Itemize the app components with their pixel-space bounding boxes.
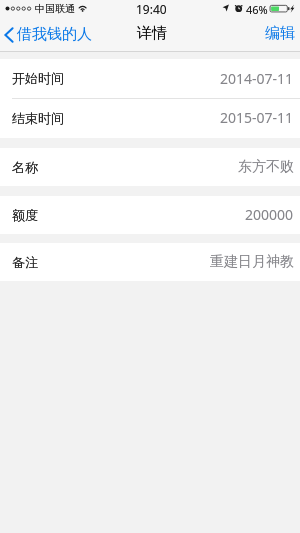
button[interactable]: Back [4, 25, 92, 44]
button[interactable]: 名称 [0, 148, 300, 186]
staticText: 借我钱的人 [17, 25, 92, 44]
staticText: 名称 [12, 159, 38, 175]
staticText: 开始时间 [12, 70, 64, 86]
staticText: 46% [246, 2, 268, 17]
staticText: 编辑 [265, 24, 295, 43]
staticText: 2014-07-11 [220, 69, 294, 88]
staticText: 额度 [12, 207, 38, 223]
button[interactable]: 编辑 [265, 24, 295, 43]
staticText: 详情 [137, 24, 167, 43]
staticText: 19:40 [136, 1, 167, 17]
button[interactable]: 额度 [0, 196, 300, 234]
staticText: 详情 [137, 24, 167, 43]
staticText: 额度 [12, 207, 38, 223]
staticText: 开始时间 [12, 70, 64, 86]
staticText: 重建日月神教 [210, 253, 294, 271]
staticText: 名称 [12, 159, 38, 175]
staticText: 东方不败 [238, 158, 294, 176]
button[interactable]: 备注 [0, 243, 300, 281]
staticText: 中国联通 [35, 2, 75, 15]
staticText: 结束时间 [12, 110, 64, 126]
staticText: 结束时间 [12, 110, 64, 126]
staticText: 2015-07-11 [220, 108, 294, 127]
staticText: 备注 [12, 254, 38, 270]
staticText: 备注 [12, 254, 38, 270]
button[interactable]: 开始时间 [0, 59, 300, 98]
other: Back [4, 27, 14, 43]
staticText: 中国联通 [35, 2, 75, 15]
staticText: 19:40 [136, 1, 167, 17]
staticText: 46% [246, 2, 268, 17]
button[interactable]: 结束时间 [0, 98, 300, 138]
staticText: 200000 [245, 205, 294, 224]
